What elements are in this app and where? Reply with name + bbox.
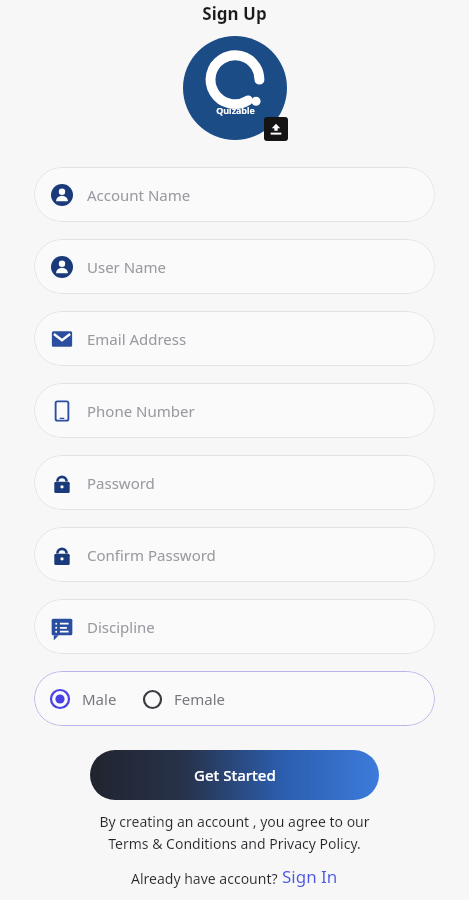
staticText: Discipline: [87, 617, 155, 637]
button[interactable]: Upload profile photo: [180, 33, 290, 143]
button[interactable]: Password: [34, 455, 435, 510]
button[interactable]: Discipline: [34, 599, 435, 654]
button[interactable]: Phone Number: [34, 383, 435, 438]
staticText: Phone Number: [87, 401, 195, 421]
staticText: Confirm Password: [87, 545, 216, 565]
button[interactable]: Male: [50, 689, 117, 709]
button[interactable]: Account Name: [34, 167, 435, 222]
button[interactable]: Sign In: [282, 865, 338, 888]
button[interactable]: User Name: [34, 239, 435, 294]
button[interactable]: Confirm Password: [34, 527, 435, 582]
button[interactable]: Female: [143, 689, 226, 709]
staticText: Email Address: [87, 329, 187, 349]
staticText: Male: [82, 689, 117, 709]
staticText: Sign Up: [202, 2, 267, 25]
staticText: Get Started: [194, 765, 276, 785]
button[interactable]: Get Started: [90, 750, 379, 800]
staticText: Female: [174, 689, 226, 709]
button[interactable]: Email Address: [34, 311, 435, 366]
staticText: Quizable: [216, 104, 255, 116]
staticText: By creating an account , you agree to ou…: [99, 812, 370, 831]
staticText: Terms & Conditions and Privacy Policy.: [108, 834, 361, 853]
staticText: Account Name: [87, 185, 191, 205]
staticText: User Name: [87, 257, 167, 277]
staticText: Password: [87, 473, 155, 493]
staticText: Already have account?: [131, 869, 282, 888]
